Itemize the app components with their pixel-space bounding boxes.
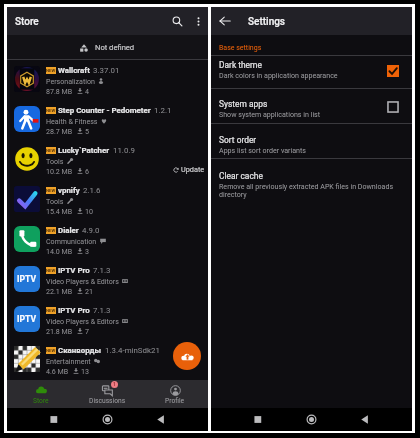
staticText: 7 [85,327,89,335]
staticText: NEW [46,68,56,73]
staticText: Health & Fitness [46,117,98,125]
staticText: Store [33,397,49,405]
staticText: Remove all previously extracted APK file… [219,182,398,198]
button[interactable]: IPTV [7,300,208,340]
staticText: 28.7 MB [46,127,73,135]
staticText: IPTV Pro [58,306,90,315]
staticText: NEW [46,148,56,153]
staticText: 14.0 MB [46,247,73,255]
staticText: NEW [46,308,56,313]
button[interactable]: Not defined [7,35,208,59]
staticText: NEW [46,348,56,353]
staticText: Lucky`Patcher [58,146,110,155]
button[interactable]: Store [7,380,74,408]
button[interactable]: IPTV [7,260,208,300]
staticText: NEW [46,108,56,113]
staticText: NEW [46,228,56,233]
staticText: 1.3.4-minSdk21 [105,346,160,355]
staticText: 7.1.3 [93,266,111,275]
staticText: Update [181,165,205,174]
button[interactable]: 1 [74,380,141,408]
staticText: NEW [46,188,56,193]
staticText: Entertainment [46,357,91,365]
staticText: Sort order [219,135,257,145]
button[interactable]: Clear cache [211,159,412,203]
button[interactable]: NEW [7,100,208,140]
button[interactable]: Back [214,10,236,32]
staticText: Profile [165,397,185,405]
staticText: Store [15,16,39,28]
staticText: 10.2 MB [46,167,73,175]
staticText: vpnify [58,186,80,195]
staticText: Communication [46,237,97,245]
staticText: 22.1 MB [46,287,73,295]
staticText: Not defined [95,43,135,52]
staticText: Step Counter - Pedometer [58,106,151,115]
staticText: 21 [85,287,93,295]
staticText: 2.1.6 [83,186,101,195]
staticText: 4.6 MB [46,367,69,375]
staticText: Сканворды [58,346,102,355]
staticText: Video Players & Editors [46,277,119,285]
staticText: Clear cache [219,171,263,181]
staticText: Discussions [89,397,126,405]
button[interactable]: Dark theme [211,56,412,88]
staticText: Dark theme [219,60,262,70]
button[interactable]: NEW [7,180,208,220]
button[interactable]: NEW [7,340,208,380]
staticText: 4.9.0 [82,226,100,235]
staticText: IPTV [17,274,37,284]
button[interactable]: NEW [7,60,208,100]
staticText: 13 [81,367,89,375]
staticText: 15.4 MB [46,207,73,215]
staticText: Settings [248,16,286,28]
staticText: 87.8 MB [46,87,73,95]
staticText: NEW [46,268,56,273]
staticText: Tools [46,157,64,165]
button[interactable]: Download updates [173,342,201,370]
staticText: 5 [85,127,89,135]
staticText: Wallcraft [58,66,90,75]
button[interactable]: NEW [7,220,208,260]
staticText: Dark colors in application appearance [219,71,338,79]
staticText: 10 [85,207,93,215]
staticText: Video Players & Editors [46,317,119,325]
button[interactable]: Profile [141,380,208,408]
staticText: 11.0.9 [113,146,135,155]
button[interactable]: Search [166,10,188,32]
staticText: 6 [85,167,89,175]
staticText: 1.2.1 [154,106,172,115]
button[interactable]: Sort order [211,124,412,158]
staticText: 1 [113,382,116,388]
button[interactable]: More options [188,11,208,31]
staticText: 3.37.01 [93,66,120,75]
staticText: Apps list sort order variants [219,146,307,154]
button[interactable]: Update [173,165,205,180]
staticText: 3 [85,247,89,255]
button[interactable]: System apps [211,89,412,123]
staticText: Personalization [46,77,95,85]
staticText: Show system applications in list [219,110,321,118]
staticText: 21.8 MB [46,327,73,335]
staticText: IPTV [17,314,37,324]
staticText: 7.1.3 [93,306,111,315]
staticText: Tools [46,197,64,205]
staticText: System apps [219,99,268,109]
button[interactable]: NEW [7,140,208,180]
staticText: Base settings [219,44,262,52]
staticText: 4 [85,87,89,95]
staticText: IPTV Pro [58,266,90,275]
staticText: Dialer [58,226,79,235]
